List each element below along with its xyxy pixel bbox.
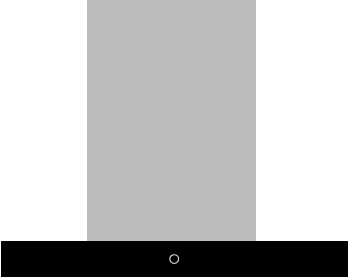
button[interactable]: Capture bbox=[164, 248, 184, 268]
